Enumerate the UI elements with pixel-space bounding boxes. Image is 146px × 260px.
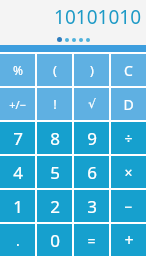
button[interactable]: %: [0, 54, 35, 86]
staticText: 7: [13, 127, 23, 150]
button[interactable]: +: [111, 224, 146, 256]
staticText: √: [88, 97, 96, 111]
staticText: .: [16, 231, 20, 250]
button[interactable]: (: [37, 54, 72, 86]
button[interactable]: 8: [37, 122, 72, 154]
staticText: 10101010: [54, 4, 141, 30]
button[interactable]: −: [111, 190, 146, 222]
staticText: 6: [87, 161, 97, 184]
staticText: 0: [50, 229, 60, 252]
button[interactable]: !: [37, 88, 72, 120]
staticText: C: [124, 61, 133, 80]
button[interactable]: ×: [111, 156, 146, 188]
staticText: 5: [50, 161, 60, 184]
staticText: 3: [87, 195, 97, 218]
staticText: %: [13, 62, 23, 78]
staticText: −: [124, 197, 133, 216]
button[interactable]: √: [74, 88, 109, 120]
staticText: 1: [13, 195, 23, 218]
staticText: 2: [50, 195, 60, 218]
button[interactable]: 2: [37, 190, 72, 222]
staticText: ): [90, 61, 94, 79]
button[interactable]: D: [111, 88, 146, 120]
button[interactable]: =: [74, 224, 109, 256]
staticText: ÷: [124, 129, 133, 148]
staticText: 9: [87, 127, 97, 150]
button[interactable]: 5: [37, 156, 72, 188]
staticText: 8: [50, 127, 60, 150]
button[interactable]: ÷: [111, 122, 146, 154]
button[interactable]: 7: [0, 122, 35, 154]
button[interactable]: 0: [37, 224, 72, 256]
staticText: ×: [124, 163, 133, 182]
staticText: (: [53, 61, 57, 79]
staticText: +/−: [9, 97, 26, 112]
button[interactable]: C: [111, 54, 146, 86]
button[interactable]: 4: [0, 156, 35, 188]
button[interactable]: 6: [74, 156, 109, 188]
button[interactable]: .: [0, 224, 35, 256]
button[interactable]: 9: [74, 122, 109, 154]
staticText: D: [123, 95, 134, 114]
button[interactable]: 3: [74, 190, 109, 222]
button[interactable]: ): [74, 54, 109, 86]
button[interactable]: 1: [0, 190, 35, 222]
button[interactable]: +/−: [0, 88, 35, 120]
staticText: 4: [13, 161, 23, 184]
staticText: +: [124, 229, 134, 251]
staticText: !: [53, 95, 57, 113]
staticText: =: [87, 231, 96, 250]
